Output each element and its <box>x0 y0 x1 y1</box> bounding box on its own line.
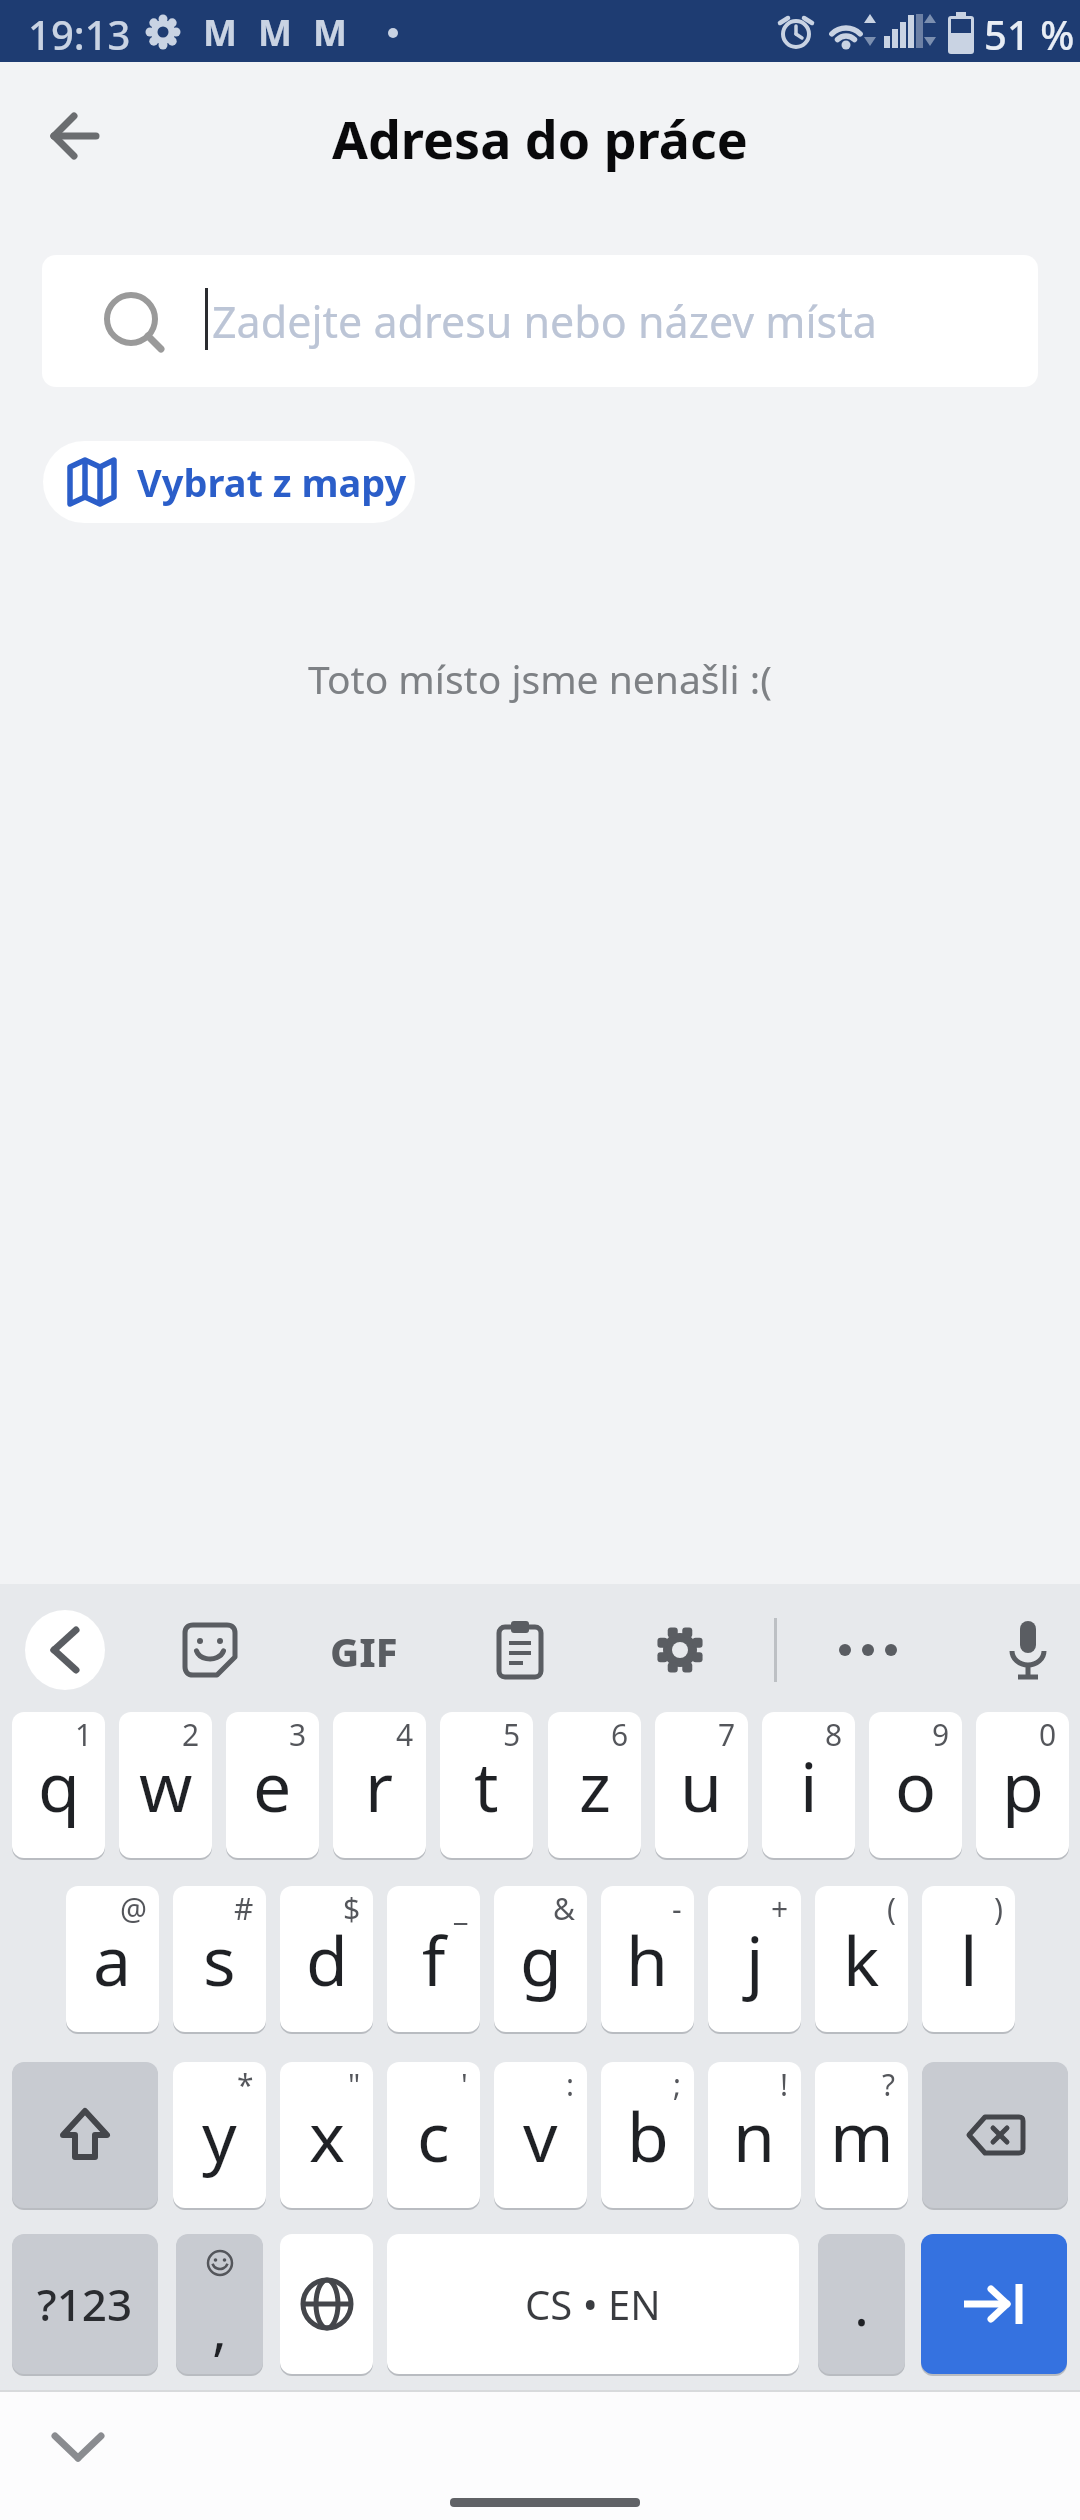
staticText: ! <box>780 2064 789 2105</box>
staticText: 4 <box>396 1714 414 1755</box>
staticText: . <box>854 2266 870 2342</box>
staticText: 19:13 <box>28 7 131 61</box>
staticText: s <box>203 1913 236 2006</box>
staticText: z <box>579 1739 611 1832</box>
staticText: a <box>93 1913 132 2006</box>
staticText: * <box>237 2064 254 2105</box>
staticText: GIF <box>330 1624 398 1678</box>
staticText: # <box>234 1888 254 1929</box>
staticText: ; <box>673 2064 682 2105</box>
staticText: 3 <box>289 1714 307 1755</box>
staticText: $ <box>343 1888 361 1929</box>
staticText: , <box>212 2290 228 2366</box>
staticText: " <box>348 2064 361 2105</box>
staticText: c <box>417 2089 450 2182</box>
staticText: CS • EN <box>525 2277 661 2331</box>
staticText: b <box>627 2089 669 2182</box>
staticText: i <box>800 1739 818 1832</box>
staticText: Toto místo jsme nenašli :( <box>308 652 772 705</box>
staticText: 1 <box>75 1714 93 1755</box>
staticText: + <box>771 1888 789 1929</box>
staticText: & <box>553 1888 575 1929</box>
staticText: : <box>566 2064 575 2105</box>
staticText: o <box>895 1739 937 1832</box>
staticText: q <box>38 1739 80 1832</box>
staticText: y <box>202 2089 237 2182</box>
staticText: 2 <box>182 1714 200 1755</box>
staticText: 0 <box>1039 1714 1057 1755</box>
staticText: h <box>626 1913 669 2006</box>
staticText: 7 <box>718 1714 736 1755</box>
staticText: g <box>520 1913 562 2006</box>
staticText: 6 <box>611 1714 629 1755</box>
staticText: d <box>306 1913 348 2006</box>
staticText: n <box>733 2089 776 2182</box>
staticText: 51 % <box>984 7 1075 61</box>
staticText: 5 <box>503 1714 521 1755</box>
staticText: M <box>203 8 237 57</box>
staticText: m <box>830 2089 894 2182</box>
staticText: Adresa do práce <box>332 103 748 174</box>
staticText: p <box>1002 1739 1044 1832</box>
staticText: x <box>309 2089 345 2182</box>
staticText: r <box>365 1739 394 1832</box>
staticText: j <box>746 1913 764 2006</box>
staticText: ? <box>882 2064 896 2105</box>
staticText: e <box>253 1739 292 1832</box>
staticText: v <box>523 2089 558 2182</box>
staticText: w <box>139 1739 193 1832</box>
staticText: u <box>680 1739 723 1832</box>
staticText: M <box>258 8 292 57</box>
staticText: 9 <box>932 1714 950 1755</box>
staticText: f <box>422 1913 446 2006</box>
staticText: ?123 <box>37 2274 133 2334</box>
staticText: - <box>672 1888 682 1929</box>
staticText: k <box>843 1913 880 2006</box>
staticText: ( <box>887 1888 896 1929</box>
staticText: M <box>313 8 347 57</box>
staticText: _ <box>454 1888 468 1929</box>
staticText: @ <box>120 1888 147 1929</box>
staticText: 8 <box>825 1714 843 1755</box>
staticText: Vybrat z mapy <box>137 456 407 508</box>
staticText: Zadejte adresu nebo název místa <box>212 292 877 351</box>
staticText: l <box>960 1913 978 2006</box>
staticText: ' <box>461 2064 468 2105</box>
staticText: t <box>474 1739 499 1832</box>
staticText: ) <box>994 1888 1003 1929</box>
